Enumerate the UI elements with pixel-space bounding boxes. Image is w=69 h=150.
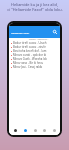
button[interactable]: Bodur tirefi cucav - zirufe bbox=[9, 45, 60, 49]
button[interactable]: Tab 5 bbox=[50, 126, 58, 134]
button[interactable]: Bovi toha kecefi dof - lum bbox=[9, 49, 60, 53]
button[interactable]: Mirov Jasi - Cesoj rakib bbox=[9, 65, 60, 69]
staticText: Heliamide ku ja ji kez alid, bbox=[11, 2, 58, 7]
staticText: ci "Heliamide Faxof" olda loku. bbox=[7, 7, 63, 12]
button[interactable]: Tab 2 bbox=[21, 126, 29, 134]
staticText: Bovi toha kecefi dof - lum bbox=[13, 49, 47, 53]
staticText: sifaliwa - dekilunate - bbox=[9, 38, 49, 41]
button[interactable]: Tab 3 bbox=[31, 126, 39, 134]
button[interactable]: Tab 4 bbox=[40, 126, 48, 134]
staticText: Heliamide Yarat bbox=[11, 31, 30, 34]
staticText: Mirovo curati - qob dor bi bbox=[13, 53, 47, 57]
staticText: Mirov Jasi - Cesoj rakib bbox=[13, 65, 43, 69]
staticText: Bodur tirefi cucav - Uzuch bbox=[13, 41, 47, 45]
staticText: Bodur tirefi cucav - zirufe bbox=[13, 45, 46, 49]
button[interactable]: Mirov vaso - Bir ki hecu bbox=[9, 61, 60, 65]
staticText: Mirovo Ciwik - Woroha lok bbox=[13, 57, 48, 61]
button[interactable]: Mirovo Ciwik - Woroha lok bbox=[9, 57, 60, 61]
button[interactable]: Bodur tirefi cucav - Uzuch bbox=[9, 41, 60, 45]
button[interactable]: Mirovo curati - qob dor bi bbox=[9, 53, 60, 57]
staticText: Mirov vaso - Bir ki hecu bbox=[13, 61, 44, 65]
button[interactable]: Search bbox=[52, 29, 58, 35]
button[interactable]: Tab 1 bbox=[11, 126, 19, 134]
